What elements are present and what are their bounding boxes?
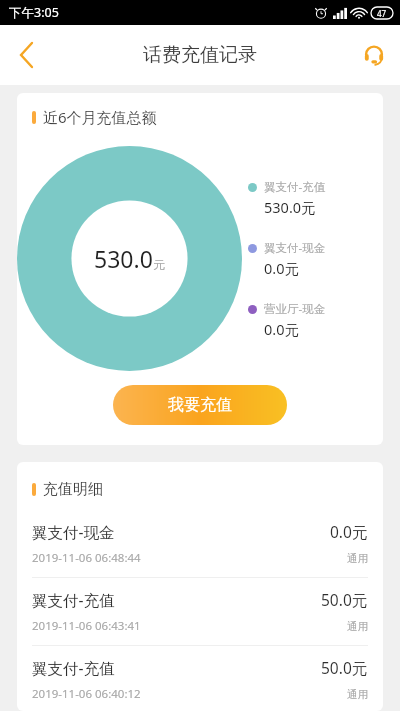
staticText: 530.0 <box>94 243 153 274</box>
staticText: 2019-11-06 06:40:12 <box>32 686 141 702</box>
staticText: 话费充值记录 <box>143 43 257 67</box>
staticText: 营业厅-现金 <box>264 301 326 317</box>
staticText: 530.0元 <box>264 197 316 217</box>
staticText: 47 <box>377 8 387 19</box>
staticText: 通用 <box>347 620 368 633</box>
button[interactable]: Back <box>0 29 52 81</box>
staticText: 0.0元 <box>264 319 299 339</box>
staticText: 翼支付-充值 <box>32 657 115 678</box>
staticText: 2019-11-06 06:43:41 <box>32 618 141 634</box>
button[interactable]: 我要充值 <box>113 385 287 425</box>
staticText: 翼支付-现金 <box>32 521 115 542</box>
button[interactable]: 翼支付-现金 <box>17 510 383 577</box>
button[interactable]: 翼支付-充值 <box>17 646 383 711</box>
staticText: 翼支付-充值 <box>264 179 326 195</box>
staticText: 充值明细 <box>43 480 103 499</box>
staticText: 下午3:05 <box>9 4 59 21</box>
button[interactable]: Customer service <box>348 29 400 81</box>
staticText: 通用 <box>347 688 368 701</box>
staticText: 0.0元 <box>330 521 368 542</box>
staticText: 0.0元 <box>264 258 299 278</box>
staticText: 元 <box>153 257 165 272</box>
staticText: 翼支付-充值 <box>32 589 115 610</box>
staticText: 我要充值 <box>168 395 232 415</box>
staticText: 50.0元 <box>321 589 368 610</box>
button[interactable]: 翼支付-充值 <box>17 578 383 645</box>
staticText: 通用 <box>347 552 368 565</box>
staticText: 2019-11-06 06:48:44 <box>32 550 141 566</box>
staticText: 近6个月充值总额 <box>43 107 157 127</box>
staticText: 翼支付-现金 <box>264 240 326 256</box>
staticText: 50.0元 <box>321 657 368 678</box>
